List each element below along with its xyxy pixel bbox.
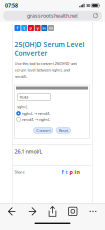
button[interactable]: Tabs [65,203,81,219]
staticText: f [16,25,18,31]
button[interactable]: Reset [56,127,71,133]
staticText: y [37,25,39,31]
staticText: Convert [36,128,50,133]
staticText: 07:58 [5,2,18,9]
button[interactable]: Forward [24,203,40,219]
staticText: ng/mL → nmol/L [22,111,50,116]
staticText: grassrootshealth.net [27,12,78,19]
staticText: in [42,25,46,31]
staticText: m [49,25,53,31]
staticText: nmol/L → ng/mL [22,117,50,122]
button[interactable]: ng/mL → nmol/L [16,110,89,116]
staticText: 10.43 [19,94,28,100]
staticText: t [23,25,25,31]
button[interactable]: More [85,203,101,219]
button[interactable]: Share on t [21,25,27,31]
staticText: Reset [59,128,68,133]
staticText: p [29,25,32,31]
button[interactable]: nmol/L → ng/mL [16,116,89,122]
staticText: f [61,168,63,175]
button[interactable]: Share on in [41,25,47,31]
staticText: ng/mL [16,104,27,109]
button[interactable]: Share on m [48,25,54,31]
staticText: serum level between ng/mL and [14,67,69,72]
button[interactable]: Convert [33,127,53,133]
staticText: nmol/L. [14,74,27,79]
staticText: 25(OH)D Serum Level [14,40,84,49]
button[interactable]: Share on f [14,25,20,31]
staticText: 26.1 nmol/L [14,148,42,155]
staticText: Use this tool to convert 25(OH)D unit [14,61,76,66]
staticText: 30 [86,3,90,8]
staticText: in [74,168,79,175]
staticText: Share [14,169,24,175]
button[interactable]: Address grassrootshealth.net [3,11,102,20]
staticText: Converter [14,49,47,58]
button[interactable]: Share on y [35,25,41,31]
button[interactable]: Share on p [28,25,34,31]
button[interactable]: Back [4,203,20,219]
staticText: t [65,168,67,175]
button[interactable]: Share [44,203,60,219]
staticText: p [69,168,72,175]
